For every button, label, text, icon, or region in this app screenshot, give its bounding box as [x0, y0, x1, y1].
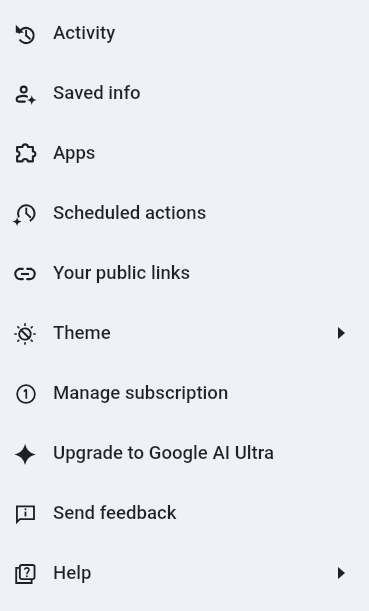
button[interactable]: Scheduled actions: [0, 183, 369, 243]
staticText: Apps: [53, 142, 96, 164]
button[interactable]: Saved info: [0, 63, 369, 123]
button[interactable]: Help: [0, 543, 369, 603]
button[interactable]: Expand Theme: [329, 321, 353, 345]
button[interactable]: Upgrade to Google AI Ultra: [0, 423, 369, 483]
staticText: Scheduled actions: [53, 202, 207, 224]
button[interactable]: Apps: [0, 123, 369, 183]
button[interactable]: Expand Help: [329, 561, 353, 585]
button[interactable]: Manage subscription: [0, 363, 369, 423]
button[interactable]: Theme: [0, 303, 369, 363]
staticText: Theme: [53, 322, 111, 344]
button[interactable]: Your public links: [0, 243, 369, 303]
staticText: Upgrade to Google AI Ultra: [53, 442, 275, 464]
staticText: Help: [53, 562, 92, 584]
button[interactable]: Send feedback: [0, 483, 369, 543]
staticText: Manage subscription: [53, 382, 229, 404]
staticText: Saved info: [53, 82, 141, 104]
staticText: Send feedback: [53, 502, 177, 524]
button[interactable]: Activity: [0, 3, 369, 63]
staticText: Your public links: [53, 262, 191, 284]
staticText: Activity: [53, 22, 116, 44]
